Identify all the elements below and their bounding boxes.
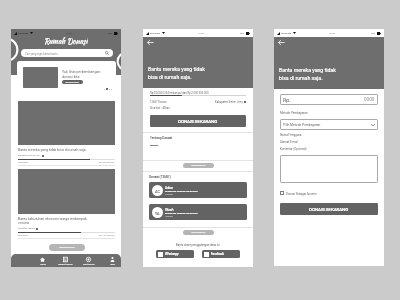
staticText: Buat Donasi [83, 263, 95, 265]
staticText: Rp.204.500.234 terkumpul dari Rp.2.000.3… [150, 91, 209, 94]
staticText: Donasi (12687) [149, 175, 171, 179]
button[interactable]: Bantu kebutuhan ekonomi warga terdampak … [18, 169, 115, 239]
button[interactable]: Selengkapnya [49, 244, 85, 251]
staticText: Donasi Sebagai Anonim [286, 192, 317, 195]
button[interactable]: Selengkapnya [183, 163, 214, 168]
staticText: Home [40, 263, 46, 265]
staticText: Pilih Metode Pembayaran [283, 123, 321, 127]
staticText: DONASI SEKARANG [178, 119, 218, 124]
staticText: YA [155, 211, 160, 215]
button[interactable]: Bantu mereka yang tidak bisa di rumah sa… [18, 101, 115, 166]
staticText: Akun [110, 263, 115, 265]
staticText: 17:24 [66, 32, 72, 35]
button[interactable]: Facebook [202, 250, 240, 258]
staticText: Riwayat Donasi [58, 263, 73, 265]
staticText: Rp. [283, 97, 291, 103]
staticText: Dikumata [18, 32, 29, 35]
staticText: Sandiffar Sabrina [18, 227, 35, 230]
staticText: 58% [371, 32, 376, 35]
staticText: Yuk lihat perkembangan donasi kita [62, 70, 101, 79]
staticText: Cari yang ingin kamu bantu [25, 52, 58, 55]
staticText: Bantu kebutuhan ekonomi warga terdampak … [18, 217, 87, 225]
other: Back [278, 39, 285, 46]
staticText: 0000 [364, 97, 375, 102]
staticText: Selengkapnya [191, 231, 206, 234]
staticText: Selengkapnya [191, 164, 206, 167]
staticText: Berdonasi sebesar Rp.50.000 [165, 212, 198, 215]
staticText: Kabupaten Simen Jerry [18, 154, 41, 157]
staticText: Dikumata [150, 32, 161, 35]
other: Back [147, 39, 154, 46]
staticText: Alamat E-mail [280, 140, 298, 143]
staticText: AC [155, 189, 160, 193]
staticText: Bantu share penggalangan dana ini [176, 243, 220, 246]
staticText: Rumah Donasi [44, 36, 88, 46]
staticText: Facebook [211, 252, 225, 256]
staticText: Rp.204.500.234 [99, 161, 115, 164]
other: Expand [371, 123, 375, 127]
staticText: 17:24 [198, 32, 204, 35]
button[interactable]: Akun [101, 254, 121, 267]
staticText: Terkumpul [18, 234, 29, 237]
button[interactable]: Rp. [280, 94, 378, 105]
staticText: 58% [240, 32, 245, 35]
button[interactable]: Perkembangan [62, 80, 83, 84]
button[interactable]: Whatsapp [156, 250, 194, 258]
button[interactable]: Cari yang ingin kamu bantu [21, 49, 113, 57]
staticText: DONASI SEKARANG [309, 207, 349, 212]
staticText: Whatsapp [165, 252, 179, 256]
staticText: Perkembangan [65, 81, 80, 83]
button[interactable]: Pilih Metode Pembayaran [280, 119, 378, 130]
staticText: Rp.176.100.000 [99, 234, 115, 237]
staticText: 58% [108, 32, 113, 35]
staticText: Dikumata [281, 32, 292, 35]
button[interactable]: DONASI SEKARANG [280, 203, 378, 215]
staticText: Berdonasi sebesar Rp.50.000 [165, 190, 198, 193]
staticText: 1 hari lalu [165, 193, 173, 195]
staticText: Anbar [165, 186, 173, 190]
staticText: Metode Pembayaran [280, 111, 308, 115]
staticText: Terkumpul [18, 161, 29, 164]
staticText: Tentang Donasi [150, 136, 173, 140]
button[interactable]: Riwayat Donasi [54, 254, 77, 267]
button[interactable]: Home [31, 254, 54, 267]
button[interactable]: DONASI SEKARANG [150, 115, 246, 127]
staticText: Selengkapnya [59, 246, 75, 249]
button[interactable]: Selengkapnya [183, 230, 214, 235]
staticText: Bantu mereka yang tidak bisa di rumah sa… [18, 148, 86, 152]
staticText: Nama Pengguna [280, 133, 302, 136]
staticText: Kabupaten Simen Jerry [215, 100, 243, 103]
staticText: Sisa hari : 40hari [150, 106, 170, 109]
button[interactable]: Donasi Sebagai Anonim [280, 191, 317, 195]
staticText: 1 hari lalu [165, 215, 173, 217]
button[interactable]: Yuk lihat perkembangan donasi kita [17, 61, 116, 93]
staticText: 17:24 [329, 32, 335, 35]
staticText: Bantu mereka yang tidak bisa di rumah sa… [279, 67, 336, 82]
staticText: Komentar (Opsional) [280, 147, 307, 150]
button[interactable]: YA [149, 204, 247, 220]
staticText: 12687 Donasi [150, 100, 167, 103]
button[interactable]: Buat Donasi [77, 254, 100, 267]
staticText: Yitzah [165, 208, 174, 212]
button[interactable]: AC [149, 182, 247, 198]
staticText: Bantu mereka yang tidak bisa di rumah sa… [148, 66, 205, 81]
